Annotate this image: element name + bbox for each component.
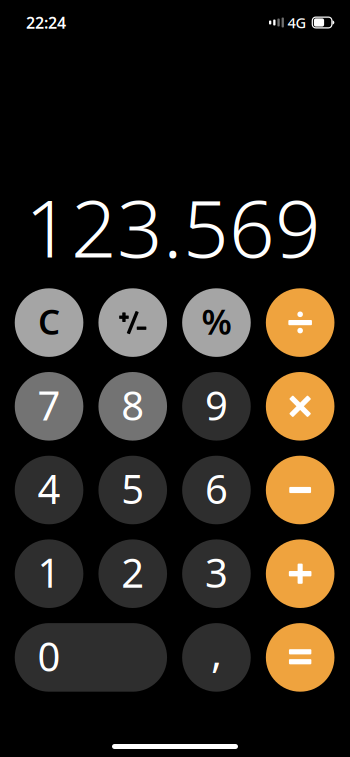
staticText: , bbox=[211, 624, 222, 679]
button[interactable]: 2 bbox=[98, 539, 167, 608]
staticText: 1 bbox=[37, 546, 60, 599]
staticText: 22:24 bbox=[26, 12, 66, 33]
button[interactable]: 7 bbox=[15, 372, 83, 441]
button[interactable]: Subtract bbox=[266, 456, 334, 524]
button[interactable]: 8 bbox=[98, 372, 167, 441]
staticText: C bbox=[38, 298, 60, 344]
button[interactable]: , bbox=[182, 623, 251, 692]
staticText: 7 bbox=[37, 378, 60, 431]
staticText: 0 bbox=[37, 629, 60, 682]
staticText: 9 bbox=[205, 378, 228, 431]
button[interactable]: 9 bbox=[182, 372, 251, 441]
button[interactable]: Equals bbox=[266, 623, 334, 692]
button[interactable]: C bbox=[15, 288, 83, 357]
button[interactable]: 3 bbox=[182, 539, 251, 608]
button[interactable]: Add bbox=[266, 539, 334, 608]
button[interactable]: 4 bbox=[15, 456, 83, 524]
staticText: 5 bbox=[121, 462, 144, 515]
button[interactable]: 0 bbox=[15, 623, 167, 692]
button[interactable]: Toggle sign bbox=[98, 288, 167, 357]
staticText: % bbox=[201, 298, 231, 344]
button[interactable]: 6 bbox=[182, 456, 251, 524]
button[interactable]: 5 bbox=[98, 456, 167, 524]
button[interactable]: % bbox=[182, 288, 251, 357]
button[interactable]: Divide bbox=[266, 288, 334, 357]
button[interactable]: Multiply bbox=[266, 372, 334, 441]
staticText: 6 bbox=[205, 462, 228, 515]
staticText: 3 bbox=[205, 546, 228, 599]
staticText: 123.569 bbox=[25, 173, 321, 280]
staticText: 2 bbox=[121, 546, 144, 599]
button[interactable]: 1 bbox=[15, 539, 83, 608]
staticText: 8 bbox=[121, 378, 144, 431]
staticText: 4G bbox=[287, 13, 306, 32]
staticText: 4 bbox=[37, 462, 60, 515]
